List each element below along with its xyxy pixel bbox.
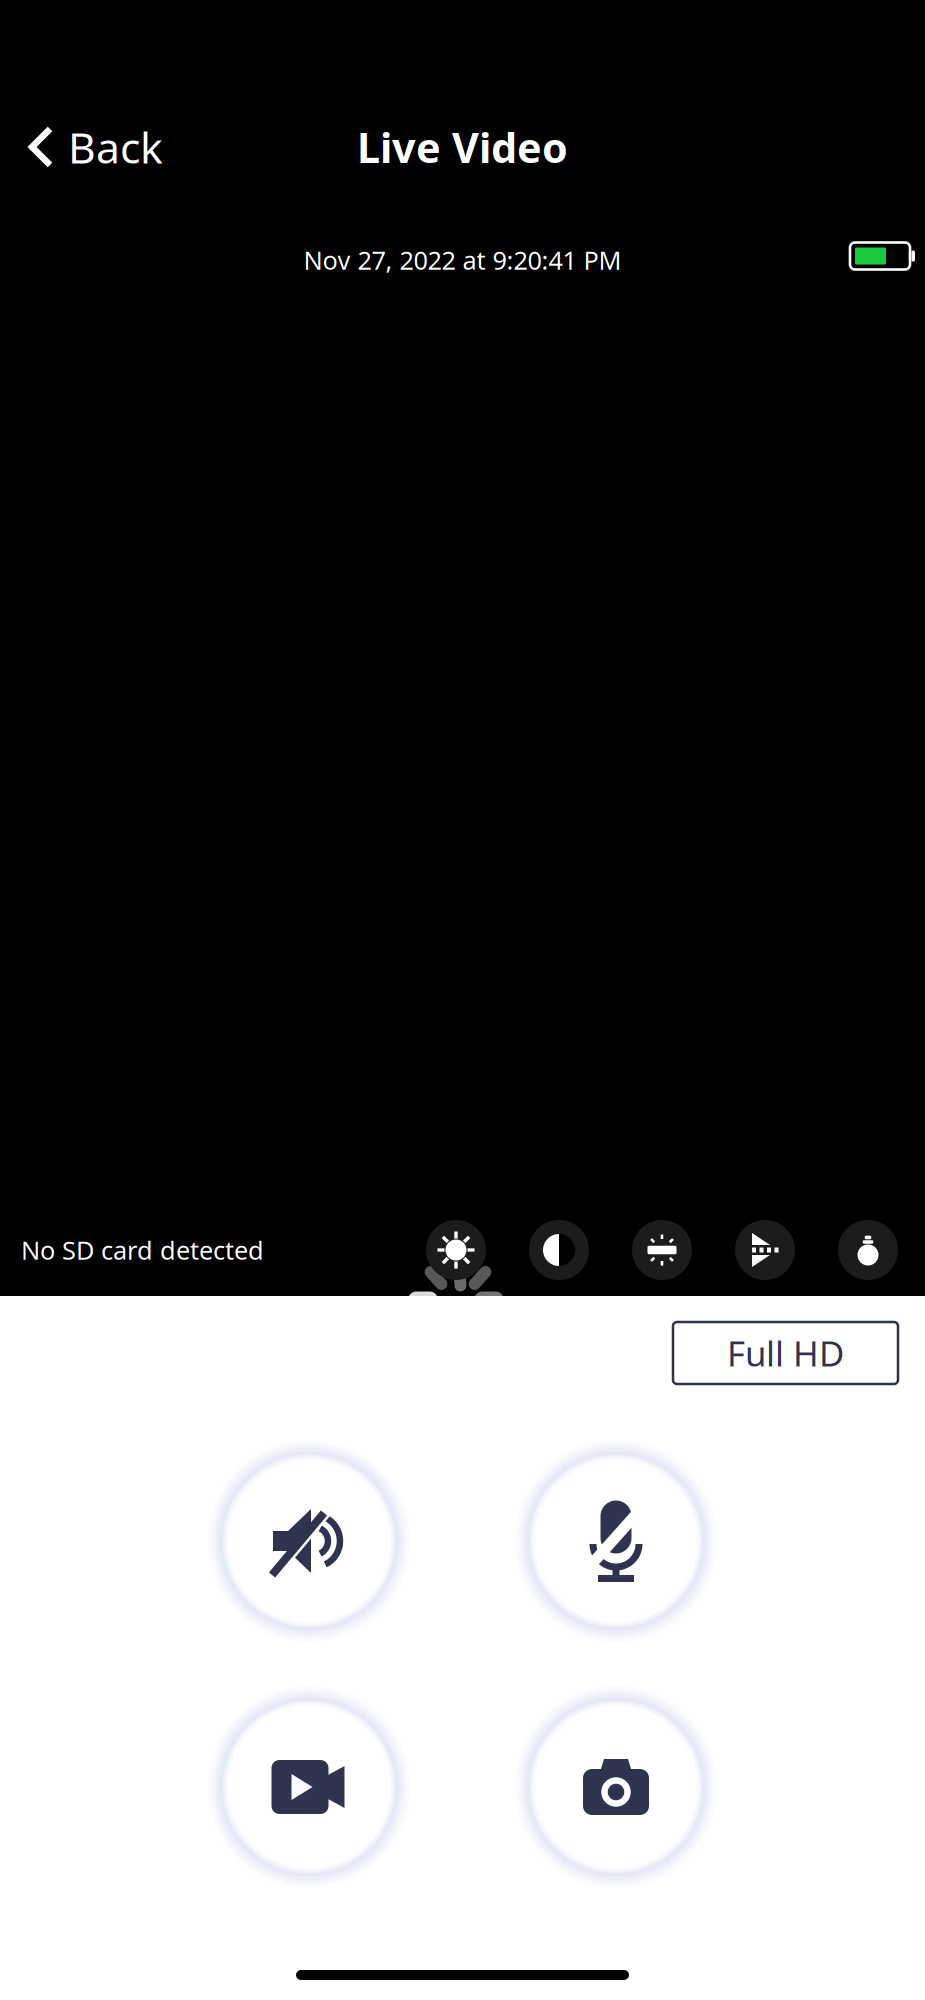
button[interactable]: Mute microphone [515, 1440, 717, 1642]
staticText: No SD card detected [21, 1233, 264, 1267]
button[interactable]: Full HD [673, 1322, 898, 1384]
button[interactable]: Record video [208, 1686, 410, 1888]
button[interactable]: Mute speaker [208, 1440, 410, 1642]
button[interactable]: White balance [838, 1220, 898, 1280]
button[interactable]: Back [0, 107, 190, 187]
button[interactable]: Contrast [529, 1220, 589, 1280]
button[interactable]: Brightness [426, 1220, 486, 1280]
staticText: Nov 27, 2022 at 9:20:41 PM [303, 243, 621, 277]
button[interactable]: Sharpness [735, 1220, 795, 1280]
staticText: Full HD [727, 1330, 844, 1376]
staticText: Back [68, 119, 163, 175]
button[interactable]: Saturation [632, 1220, 692, 1280]
button[interactable]: Take photo [515, 1686, 717, 1888]
staticText: Live Video [357, 120, 568, 174]
